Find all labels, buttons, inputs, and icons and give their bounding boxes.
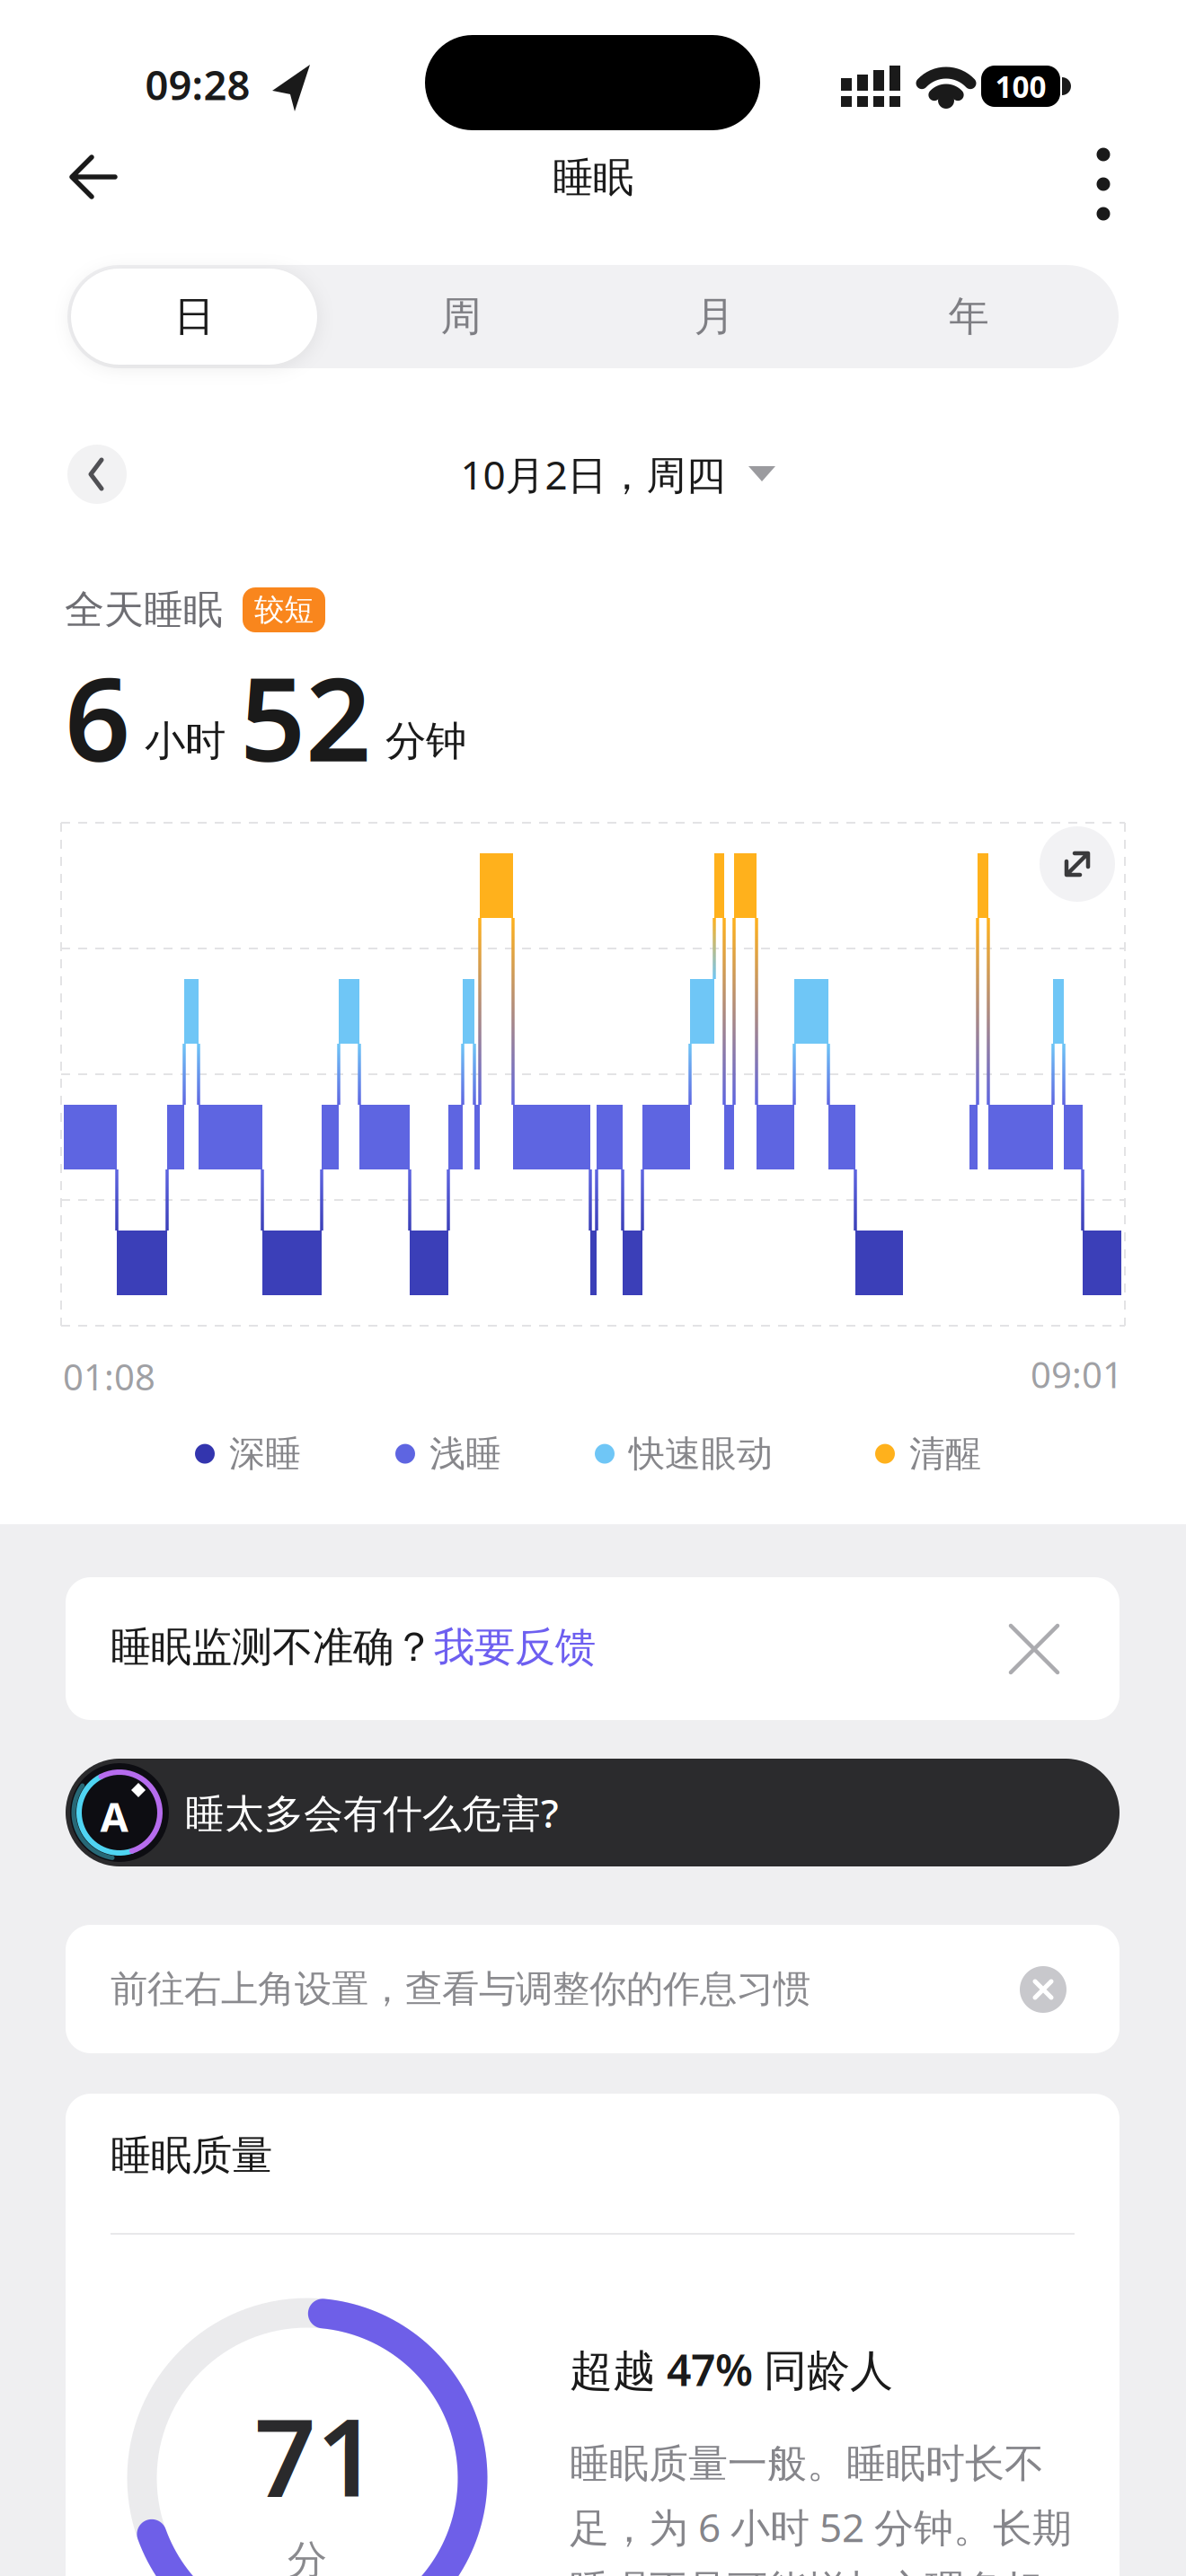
staticText: 睡眠质量一般。睡眠时长不 bbox=[570, 2439, 1044, 2488]
staticText: 足，为 6 小时 52 分钟。长期 bbox=[570, 2501, 1072, 2553]
button[interactable]: 周 bbox=[331, 269, 591, 365]
staticText: 日 bbox=[174, 292, 214, 342]
staticText: 清醒 bbox=[909, 1432, 981, 1476]
staticText: 月 bbox=[694, 292, 735, 342]
button[interactable]: More options bbox=[1067, 112, 1139, 256]
staticText: 10月2日，周四 bbox=[460, 448, 726, 500]
staticText: 睡眠监测不准确？ bbox=[111, 1622, 434, 1672]
button[interactable]: Dismiss bbox=[998, 1613, 1070, 1685]
staticText: 浅睡 bbox=[429, 1432, 501, 1476]
staticText: 前往右上角设置，查看与调整你的作息习惯 bbox=[111, 1966, 810, 2012]
staticText: A bbox=[100, 1789, 128, 1843]
staticText: 09:28 bbox=[145, 57, 250, 111]
staticText: 52 bbox=[240, 640, 371, 793]
button[interactable]: Expand chart bbox=[1040, 826, 1115, 902]
staticText: 睡太多会有什么危害? bbox=[185, 1786, 559, 1839]
button[interactable]: Back bbox=[56, 141, 128, 213]
staticText: 周 bbox=[441, 292, 481, 342]
staticText: 深睡 bbox=[229, 1432, 301, 1476]
button[interactable]: Previous day bbox=[67, 445, 127, 504]
staticText: 分 bbox=[288, 2536, 327, 2576]
staticText: 快速眼动 bbox=[629, 1432, 773, 1476]
staticText: 分钟 bbox=[385, 716, 466, 766]
button[interactable]: 月 bbox=[584, 269, 845, 365]
staticText: 睡眠 bbox=[553, 153, 633, 203]
button[interactable]: A bbox=[66, 1759, 1120, 1866]
button[interactable]: 日 bbox=[71, 269, 317, 365]
button[interactable]: 我要反馈 bbox=[434, 1622, 596, 1672]
staticText: 睡眠不足可能增加心理负担 bbox=[570, 2566, 1044, 2576]
staticText: 71 bbox=[254, 2383, 378, 2526]
staticText: 100 bbox=[995, 66, 1046, 106]
staticText: 睡眠质量 bbox=[111, 2130, 272, 2181]
staticText: 全天睡眠 bbox=[65, 586, 223, 634]
staticText: 超越 47% 同龄人 bbox=[570, 2341, 893, 2398]
staticText: 6 bbox=[65, 640, 130, 793]
button[interactable]: Dismiss tip bbox=[1020, 1966, 1067, 2013]
button[interactable]: 年 bbox=[838, 269, 1099, 365]
staticText: 01:08 bbox=[63, 1353, 155, 1400]
staticText: 09:01 bbox=[1031, 1350, 1123, 1398]
staticText: 小时 bbox=[145, 716, 226, 766]
staticText: 较短 bbox=[254, 592, 314, 628]
staticText: 年 bbox=[948, 292, 989, 342]
staticText: 我要反馈 bbox=[434, 1622, 596, 1672]
button[interactable]: 10月2日，周四 bbox=[0, 445, 1186, 2576]
